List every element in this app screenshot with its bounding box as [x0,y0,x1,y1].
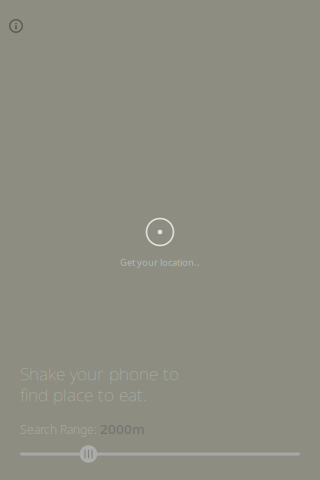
staticText: Search Range: [20,421,97,437]
staticText: Shake your phone to [20,362,179,385]
staticText: Get your location.. [120,256,200,268]
button[interactable]: Get your location.. [0,216,320,282]
button[interactable]: About [1,11,31,41]
button[interactable]: Search range slider [20,444,300,464]
staticText: 2000m [100,420,145,438]
staticText: find place to eat. [20,383,147,406]
